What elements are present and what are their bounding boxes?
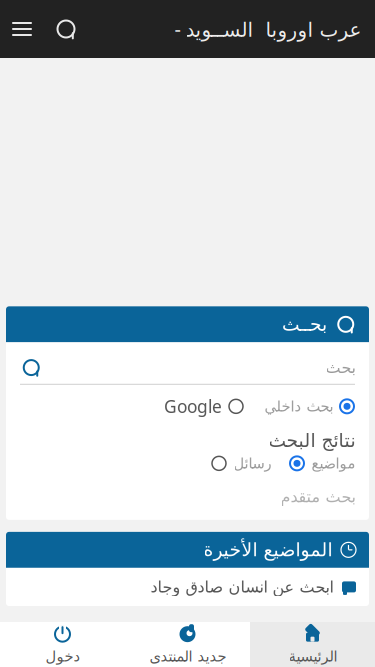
button[interactable]: الرئيسية [250,622,375,667]
staticText: جديد المنتدى [149,648,226,665]
button[interactable]: جديد المنتدى [125,622,250,667]
staticText: مواضيع [311,455,355,472]
button[interactable]: Menu [0,0,44,58]
staticText: المواضيع الأخيرة [203,539,332,560]
button[interactable]: Search [44,0,88,58]
staticText: ابحث عن انسان صادق وجاد [150,578,333,596]
staticText: بحث داخلي [264,398,333,415]
staticText: رسائل [233,455,271,472]
staticText: نتائج البحث [268,430,355,451]
staticText: دخول [45,648,80,665]
button[interactable]: بحث متقدم [6,472,369,520]
staticText: بحث [325,358,355,377]
button[interactable]: ابحث عن انسان صادق وجاد [6,568,369,606]
staticText: الرئيسية [288,648,337,665]
staticText: عرب اوروبا الســويد - [174,16,361,42]
button[interactable]: دخول [0,622,125,667]
staticText: بحث متقدم [280,488,355,506]
staticText: Google [164,395,222,418]
staticText: بحــث [281,314,326,335]
